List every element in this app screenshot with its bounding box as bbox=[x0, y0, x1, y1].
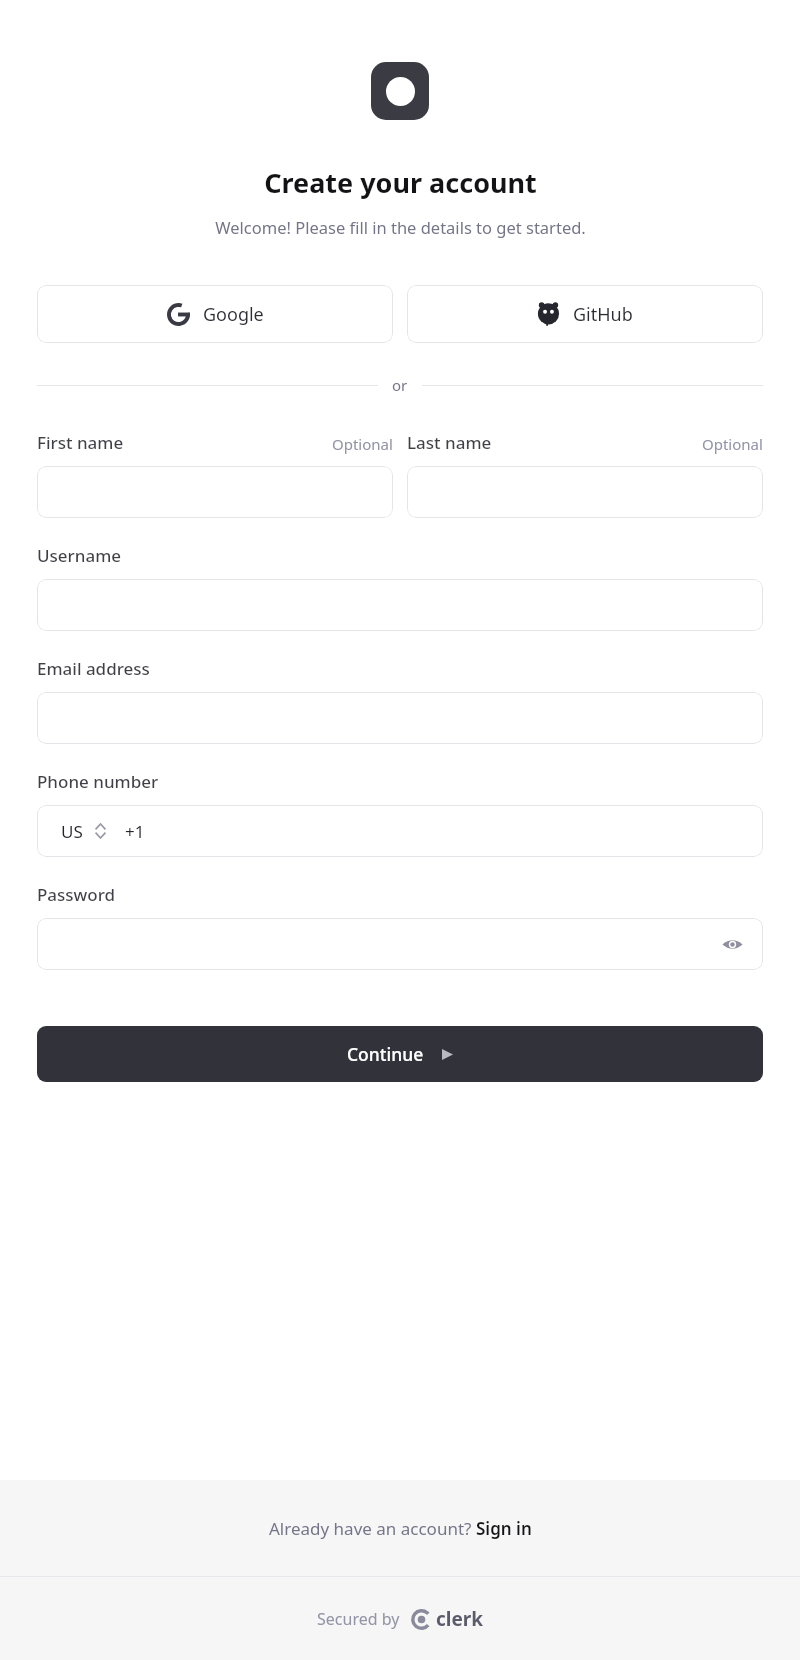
button[interactable]: Continue bbox=[37, 1026, 763, 1082]
staticText: or bbox=[392, 375, 408, 395]
button[interactable]: Show password bbox=[37, 918, 763, 970]
staticText: Google bbox=[203, 302, 264, 327]
button[interactable]: Google bbox=[37, 285, 393, 343]
staticText: Email address bbox=[37, 657, 150, 680]
staticText: Already have an account? bbox=[269, 1517, 476, 1540]
staticText: Secured by bbox=[317, 1608, 400, 1630]
button[interactable] bbox=[37, 579, 763, 631]
button[interactable]: GitHub bbox=[407, 285, 763, 343]
button[interactable] bbox=[37, 692, 763, 744]
staticText: Create your account bbox=[264, 164, 537, 201]
staticText: +1 bbox=[125, 820, 145, 843]
staticText: clerk bbox=[436, 1606, 484, 1632]
button[interactable]: Already have an account? bbox=[0, 1480, 800, 1576]
button[interactable]: Show password bbox=[717, 929, 747, 959]
staticText: Optional bbox=[702, 434, 763, 454]
staticText: Password bbox=[37, 883, 116, 906]
staticText: Last name bbox=[407, 431, 492, 454]
staticText: Optional bbox=[332, 434, 393, 454]
staticText: First name bbox=[37, 431, 124, 454]
staticText: GitHub bbox=[573, 302, 633, 327]
staticText: US bbox=[61, 820, 83, 843]
staticText: Phone number bbox=[37, 770, 159, 793]
staticText: Welcome! Please fill in the details to g… bbox=[215, 216, 586, 238]
staticText: Sign in bbox=[476, 1517, 532, 1540]
button[interactable] bbox=[37, 466, 393, 518]
button[interactable] bbox=[407, 466, 763, 518]
staticText: Continue bbox=[347, 1042, 424, 1066]
staticText: Username bbox=[37, 544, 121, 567]
button[interactable]: US bbox=[37, 805, 763, 857]
